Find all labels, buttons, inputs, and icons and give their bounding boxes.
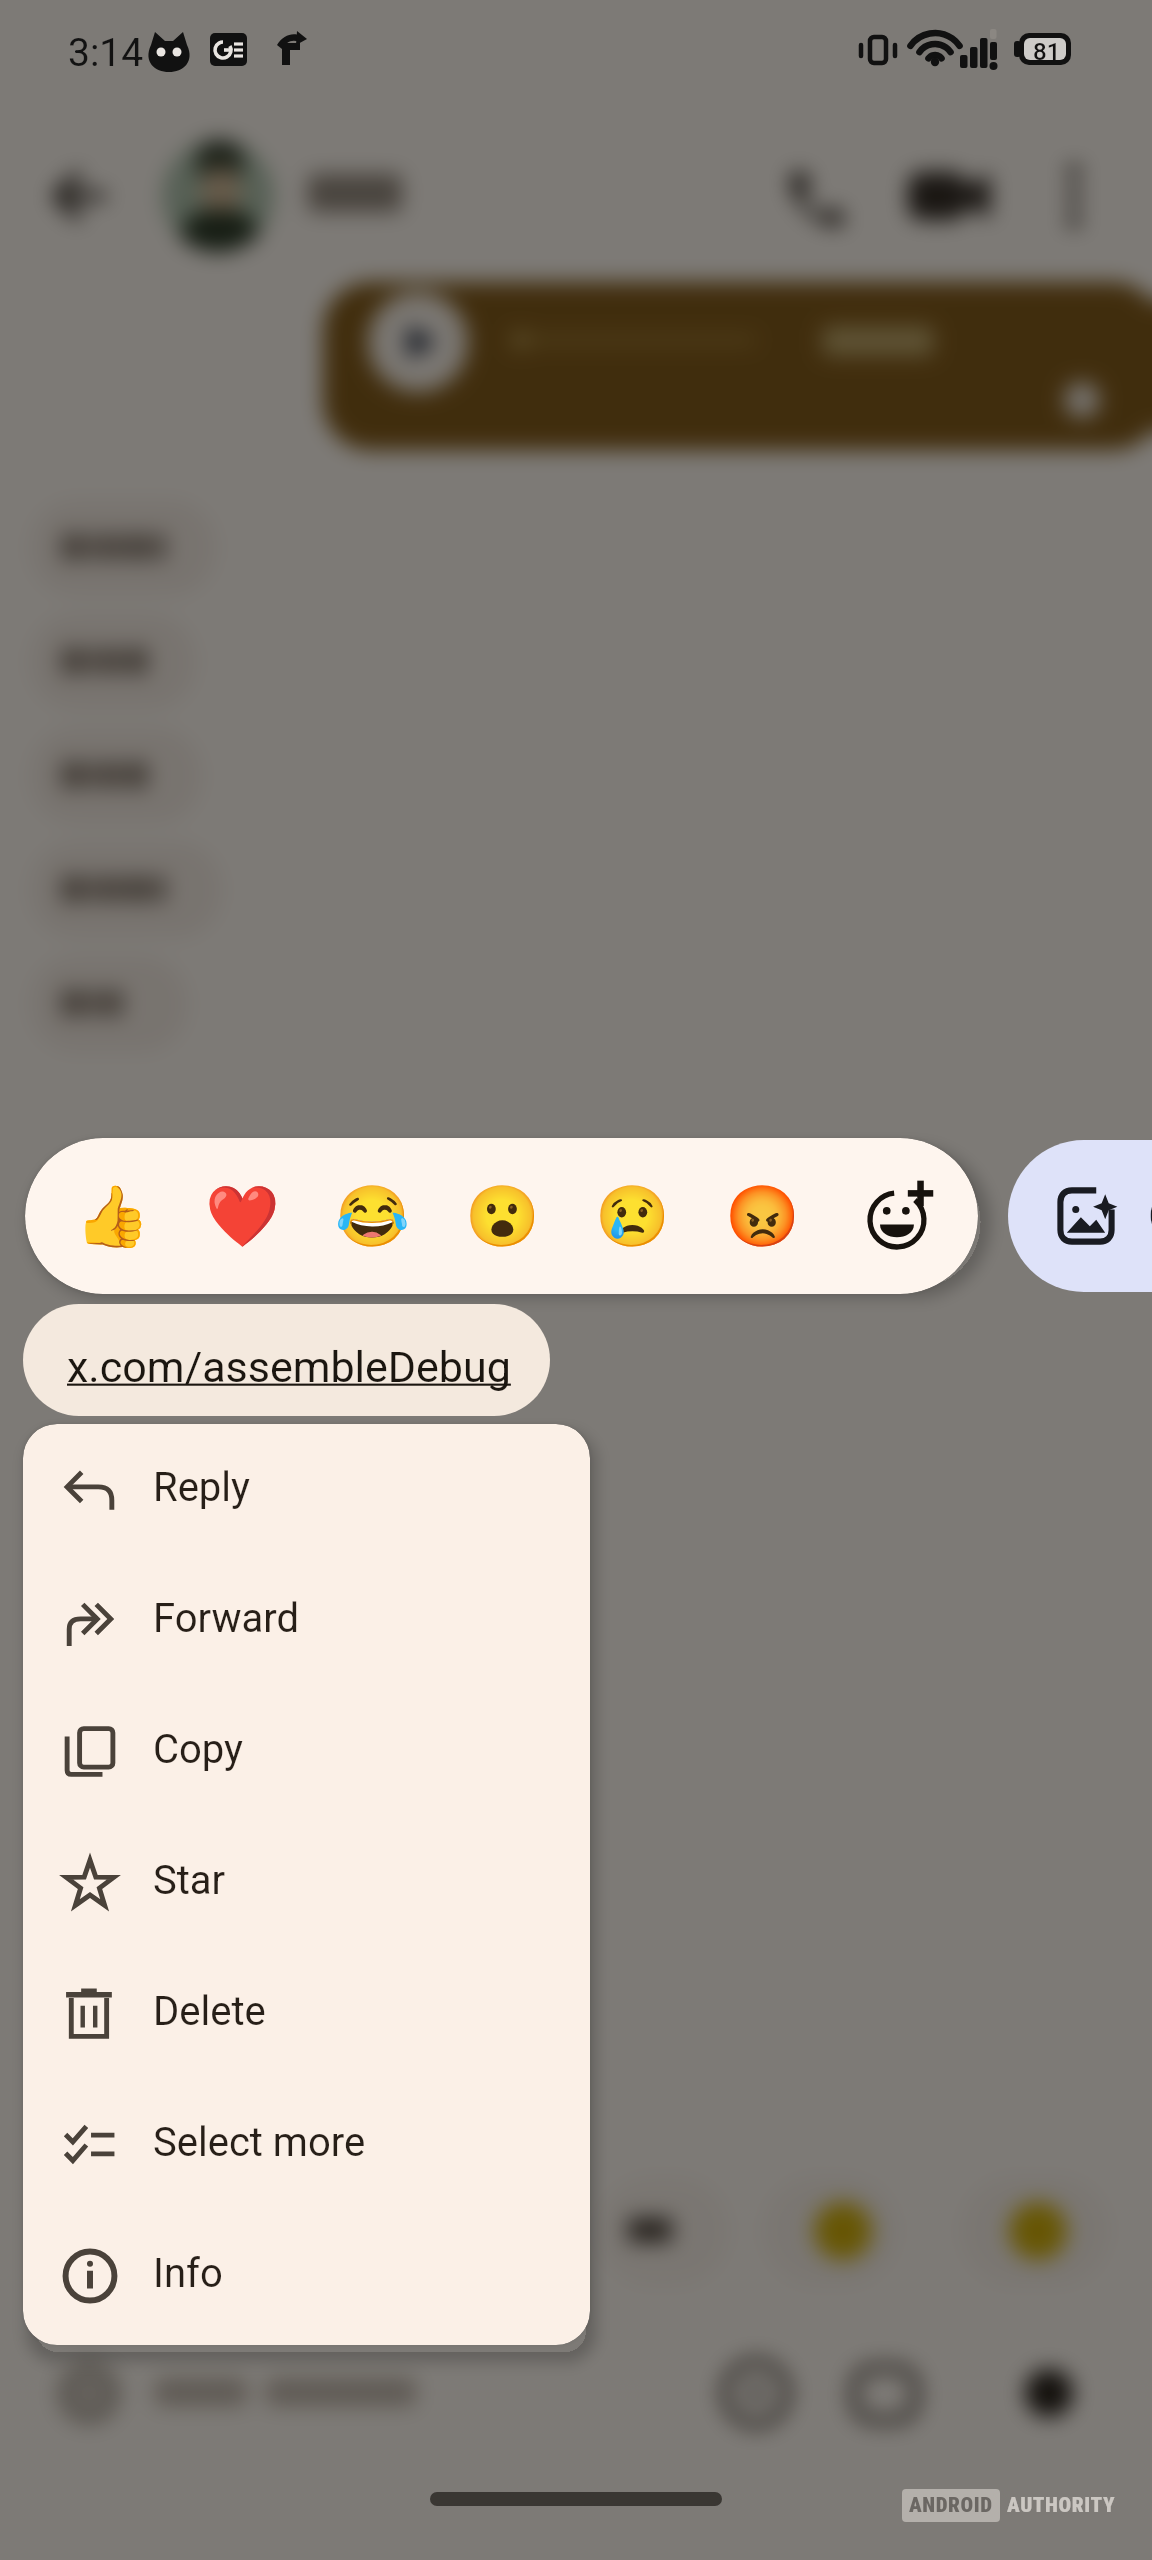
staticText: Info bbox=[153, 2250, 223, 2297]
button[interactable]: Edit with AI bbox=[1008, 1140, 1152, 1292]
staticText: 👍 bbox=[75, 1181, 150, 1251]
button[interactable]: Info bbox=[23, 2210, 590, 2341]
button[interactable]: Surprised bbox=[437, 1151, 567, 1281]
button[interactable]: Forward bbox=[23, 1555, 590, 1686]
button[interactable]: Heart bbox=[177, 1151, 307, 1281]
staticText: 3:14 bbox=[68, 30, 144, 76]
button[interactable]: Copy bbox=[23, 1686, 590, 1817]
button[interactable]: Reply bbox=[23, 1424, 590, 1555]
staticText: Star bbox=[153, 1857, 226, 1904]
staticText: ANDROID bbox=[909, 2493, 993, 2518]
button[interactable]: Select more bbox=[23, 2079, 590, 2210]
button[interactable]: Angry bbox=[697, 1151, 827, 1281]
button[interactable]: More reactions bbox=[836, 1151, 966, 1281]
staticText: Select more bbox=[153, 2119, 366, 2166]
button[interactable]: Thumbs up bbox=[47, 1151, 177, 1281]
staticText: 😮 bbox=[465, 1181, 540, 1251]
staticText: Copy bbox=[153, 1726, 244, 1773]
staticText: C bbox=[1148, 1189, 1152, 1243]
staticText: 😡 bbox=[725, 1181, 800, 1251]
staticText: 😂 bbox=[335, 1181, 410, 1251]
button[interactable]: Delete bbox=[23, 1948, 590, 2079]
button[interactable]: Crying bbox=[567, 1151, 697, 1281]
staticText: 😢 bbox=[595, 1181, 670, 1251]
button[interactable]: Star bbox=[23, 1817, 590, 1948]
staticText: AUTHORITY bbox=[1007, 2493, 1116, 2518]
staticText: Reply bbox=[153, 1464, 250, 1511]
staticText: x.com/assembleDebug bbox=[67, 1342, 511, 1392]
staticText: 81 bbox=[1033, 38, 1061, 66]
button[interactable]: x.com/assembleDebug bbox=[23, 1304, 550, 1416]
staticText: Forward bbox=[153, 1595, 299, 1642]
staticText: ❤️ bbox=[205, 1181, 280, 1251]
staticText: Delete bbox=[153, 1988, 266, 2035]
button[interactable]: Laughing bbox=[307, 1151, 437, 1281]
